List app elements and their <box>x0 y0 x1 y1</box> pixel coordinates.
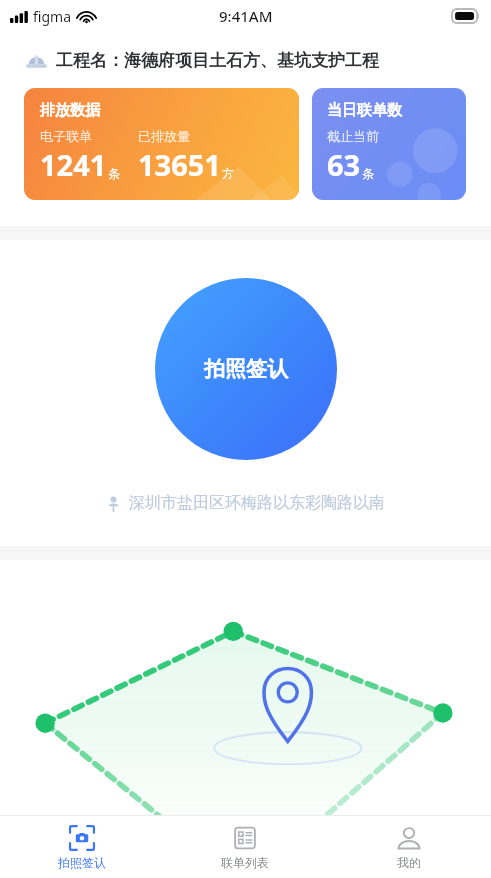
staticText: 截止当前 <box>327 128 379 144</box>
button[interactable]: 深圳市盐田区环梅路以东彩陶路以南 <box>98 490 393 516</box>
staticText: 方 <box>222 166 234 181</box>
staticText: 电子联单 <box>40 128 92 144</box>
staticText: 拍照签认 <box>204 356 288 382</box>
button[interactable]: 当日联单数 <box>312 88 466 200</box>
button[interactable]: 排放数据 <box>24 88 299 200</box>
staticText: 联单列表 <box>221 855 269 870</box>
staticText: figma <box>33 7 71 26</box>
button[interactable]: Project area map <box>0 560 491 815</box>
staticText: 条 <box>362 166 374 181</box>
staticText: 工程名：海德府项目土石方、基坑支护工程 <box>56 50 379 71</box>
staticText: 拍照签认 <box>58 855 106 870</box>
staticText: 当日联单数 <box>327 101 402 120</box>
button[interactable]: 拍照签认 <box>155 278 337 460</box>
staticText: 9:41AM <box>219 6 273 26</box>
staticText: 深圳市盐田区环梅路以东彩陶路以南 <box>129 493 385 513</box>
staticText: 63 <box>327 145 361 184</box>
button[interactable]: 拍照签认 <box>0 816 163 878</box>
staticText: 排放数据 <box>40 101 100 120</box>
button[interactable]: 我的 <box>327 816 491 878</box>
staticText: 已排放量 <box>138 128 190 144</box>
button[interactable]: 联单列表 <box>163 816 327 878</box>
staticText: 条 <box>108 166 120 181</box>
staticText: 13651 <box>138 145 221 184</box>
staticText: 1241 <box>40 145 107 184</box>
staticText: 我的 <box>397 855 421 870</box>
button[interactable]: 工程名：海德府项目土石方、基坑支护工程 <box>0 32 491 88</box>
